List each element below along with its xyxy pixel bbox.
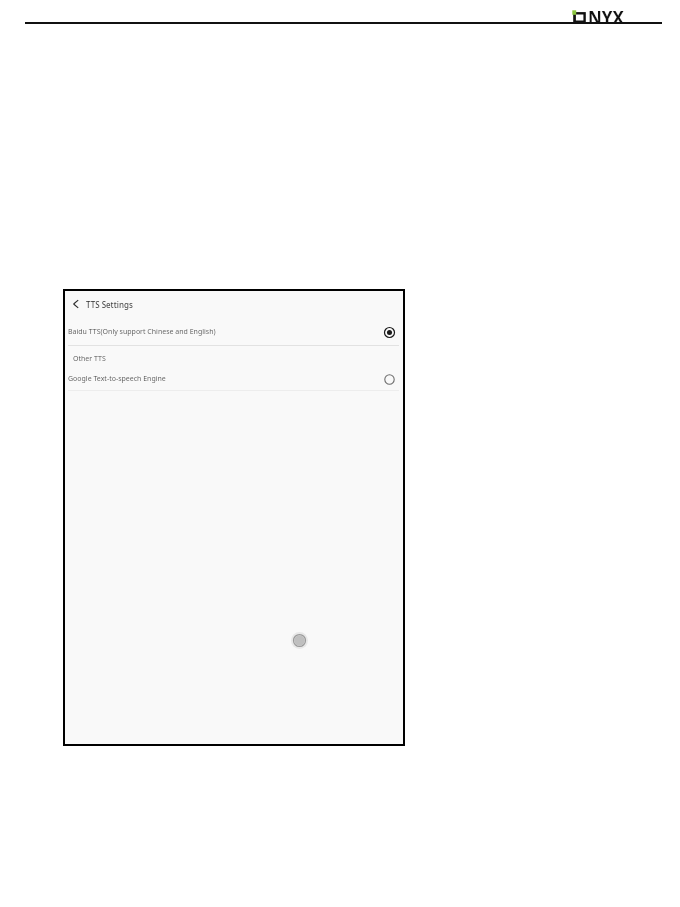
other: Loading — [291, 632, 308, 649]
staticText: Other TTS — [73, 354, 106, 364]
button[interactable]: Baidu TTS(Only support Chinese and Engli… — [63, 319, 405, 345]
staticText: Google Text-to-speech Engine — [68, 374, 384, 384]
button[interactable]: Google Text-to-speech Engine — [63, 368, 405, 390]
staticText: Baidu TTS(Only support Chinese and Engli… — [68, 327, 384, 337]
staticText: NYX — [588, 6, 624, 29]
button[interactable]: Back — [63, 289, 405, 319]
staticText: TTS Settings — [86, 299, 133, 310]
other: Back — [71, 299, 81, 309]
